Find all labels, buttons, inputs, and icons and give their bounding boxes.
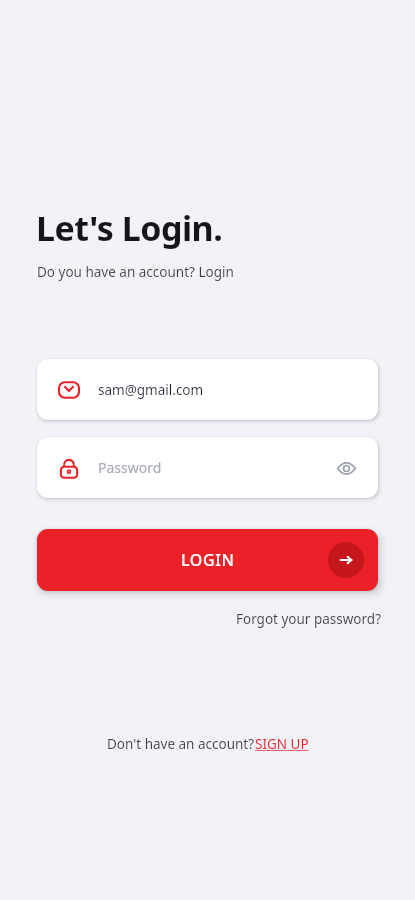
staticText: Password bbox=[98, 458, 332, 477]
staticText: Let's Login. bbox=[36, 205, 223, 251]
staticText: Don't have an account? bbox=[107, 735, 255, 753]
staticText: Do you have an account? Login bbox=[37, 263, 234, 281]
button[interactable]: Password bbox=[37, 437, 378, 498]
button[interactable]: Forgot your password? bbox=[234, 608, 384, 630]
button[interactable]: Show password bbox=[332, 454, 360, 482]
button[interactable]: LOGIN bbox=[37, 529, 378, 591]
staticText: SIGN UP bbox=[255, 735, 309, 753]
staticText: LOGIN bbox=[181, 549, 235, 571]
button[interactable]: sam@gmail.com bbox=[37, 359, 378, 420]
button[interactable]: SIGN UP bbox=[255, 735, 309, 753]
staticText: sam@gmail.com bbox=[98, 381, 204, 399]
staticText: Forgot your password? bbox=[236, 610, 382, 628]
